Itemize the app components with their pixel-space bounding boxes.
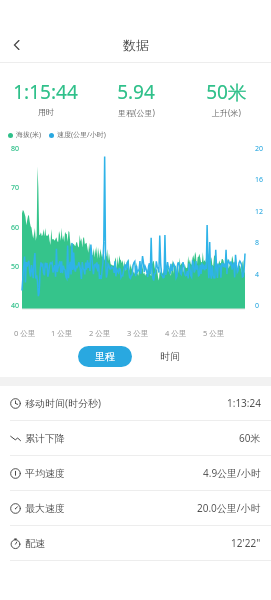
button[interactable]: 配速 [0, 526, 271, 560]
staticText: 里程 [95, 350, 115, 363]
staticText: 速度(公里/小时) [57, 130, 106, 140]
button[interactable]: 时间 [146, 346, 194, 367]
staticText: 时间 [160, 350, 180, 363]
staticText: 用时 [38, 107, 54, 117]
staticText: 最大速度 [25, 502, 65, 515]
staticText: 3 公里 [127, 328, 149, 338]
staticText: 80 [11, 144, 20, 154]
staticText: 2 公里 [89, 328, 111, 338]
staticText: 60米 [239, 431, 261, 445]
staticText: 4 [255, 270, 260, 280]
staticText: 1:15:44 [13, 79, 78, 105]
button[interactable]: 平均速度 [0, 456, 271, 490]
staticText: 数据 [123, 37, 149, 53]
staticText: 4 公里 [165, 328, 187, 338]
staticText: 60 [11, 223, 20, 233]
staticText: 4.9公里/小时 [203, 466, 261, 480]
staticText: 5.94 [117, 79, 155, 105]
staticText: 40 [11, 301, 20, 311]
staticText: 配速 [25, 537, 45, 550]
button[interactable]: 累计下降 [0, 421, 271, 455]
staticText: 12 [255, 207, 264, 217]
staticText: 海拔(米) [16, 130, 42, 140]
staticText: 1:13:24 [227, 396, 261, 410]
staticText: 16 [255, 175, 264, 185]
staticText: 平均速度 [25, 467, 65, 480]
staticText: 50米 [206, 79, 247, 105]
button[interactable]: 里程 [78, 346, 132, 367]
staticText: 50 [11, 262, 20, 272]
button[interactable]: Back [0, 28, 34, 62]
staticText: 5 公里 [203, 328, 225, 338]
staticText: 70 [11, 183, 20, 193]
staticText: 8 [255, 238, 260, 248]
staticText: 20.0公里/小时 [197, 501, 261, 515]
button[interactable]: 最大速度 [0, 491, 271, 525]
staticText: 0 公里 [14, 328, 36, 338]
staticText: 里程(公里) [118, 107, 155, 118]
staticText: 移动时间(时分秒) [25, 396, 101, 410]
staticText: 上升(米) [212, 107, 241, 118]
staticText: 20 [255, 144, 264, 154]
staticText: 0 [255, 301, 260, 311]
staticText: 1 公里 [51, 328, 73, 338]
staticText: 12'22" [231, 536, 261, 550]
button[interactable]: 移动时间(时分秒) [0, 386, 271, 420]
staticText: 累计下降 [25, 432, 65, 445]
